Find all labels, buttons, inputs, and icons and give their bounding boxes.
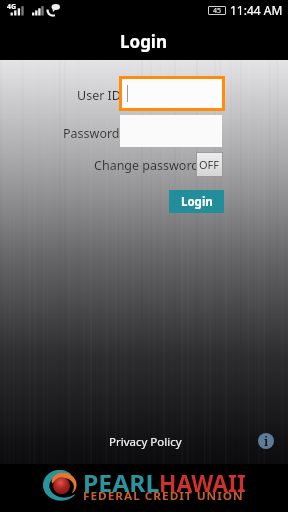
staticText: FEDERAL CREDIT UNION xyxy=(83,489,244,503)
staticText: HAWAII xyxy=(159,467,246,500)
staticText: 11:44 AM xyxy=(230,2,283,18)
staticText: Privacy Policy xyxy=(109,434,182,450)
staticText: Password: xyxy=(63,125,123,142)
staticText: Login xyxy=(120,30,168,53)
staticText: User ID: xyxy=(77,87,125,104)
staticText: PEARL xyxy=(83,467,159,500)
button[interactable]: Privacy Policy xyxy=(104,429,187,455)
button[interactable]: Login xyxy=(169,190,224,213)
button[interactable]: Information xyxy=(258,433,274,449)
staticText: 45 xyxy=(213,6,222,15)
staticText: 4G xyxy=(7,2,17,12)
staticText: OFF xyxy=(199,157,220,172)
staticText: Login xyxy=(181,194,213,210)
button[interactable] xyxy=(119,76,225,111)
button[interactable]: OFF xyxy=(196,152,223,177)
staticText: i xyxy=(264,433,269,449)
staticText: Change password: xyxy=(94,157,203,174)
